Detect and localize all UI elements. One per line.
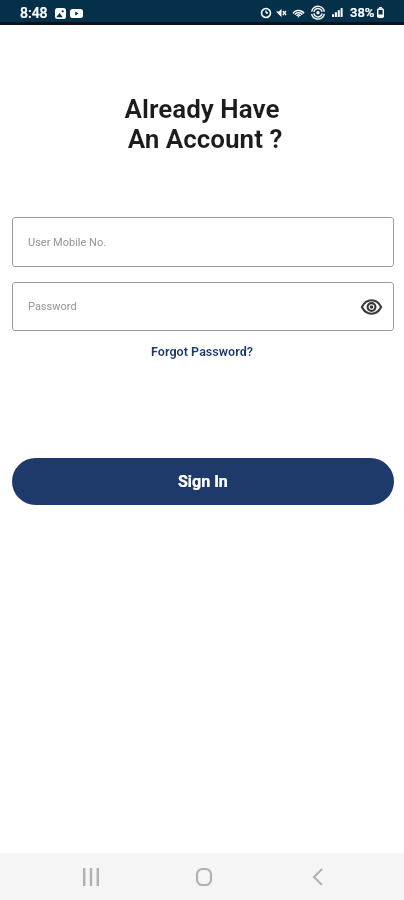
staticText: Password [28,300,77,313]
button[interactable]: Recent apps [67,853,115,900]
staticText: User Mobile No. [28,236,107,249]
staticText: 38% [350,5,375,20]
button[interactable]: Back [294,853,342,900]
staticText: An Account ? [3,124,404,154]
staticText: 8:48 [20,5,48,21]
button[interactable]: User Mobile No. [12,217,394,267]
staticText: Already Have [0,94,404,124]
button[interactable]: Password [12,282,394,331]
button[interactable]: Show password [354,290,388,324]
staticText: Forgot Password? [151,344,254,359]
button[interactable]: Forgot Password? [145,341,260,362]
button[interactable]: Home [180,853,228,900]
button[interactable]: Sign In [12,458,394,505]
staticText: Sign In [178,472,228,491]
